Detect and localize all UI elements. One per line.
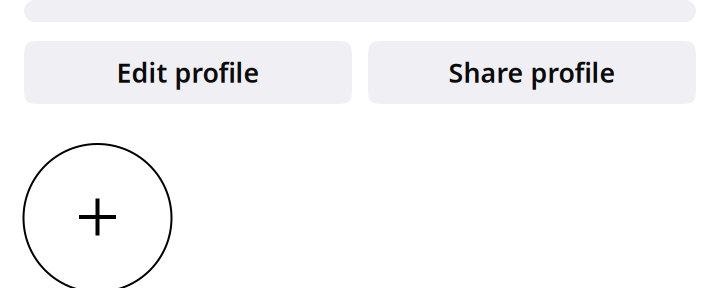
button[interactable]: New story highlight [23, 144, 171, 288]
button[interactable]: Share profile [368, 41, 696, 104]
staticText: Share profile [448, 55, 615, 90]
staticText: Edit profile [116, 55, 259, 90]
button[interactable]: Edit profile [24, 41, 352, 104]
